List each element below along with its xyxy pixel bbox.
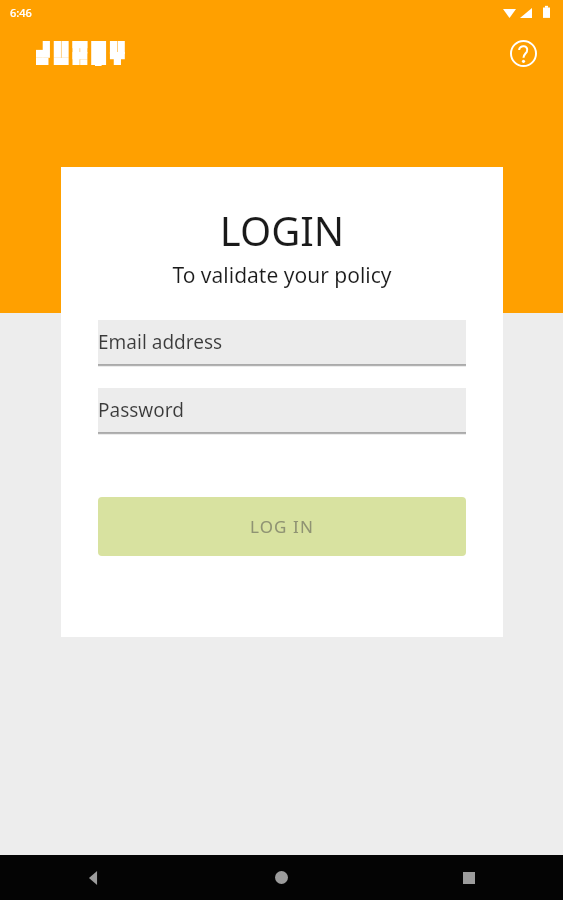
staticText: 6:46 — [10, 5, 32, 20]
button[interactable]: Home — [187, 855, 375, 900]
staticText: Email address — [98, 329, 223, 355]
staticText: Password — [98, 397, 184, 423]
button[interactable]: Help — [506, 36, 540, 70]
button[interactable]: Back — [0, 855, 187, 900]
button[interactable]: Password — [98, 388, 466, 435]
staticText: LOG IN — [250, 515, 314, 538]
staticText: To validate your policy — [61, 261, 503, 290]
button[interactable]: Recents — [375, 855, 563, 900]
button[interactable]: Email address — [98, 320, 466, 367]
staticText: LOGIN — [61, 203, 503, 257]
button[interactable]: LOG IN — [98, 497, 466, 556]
